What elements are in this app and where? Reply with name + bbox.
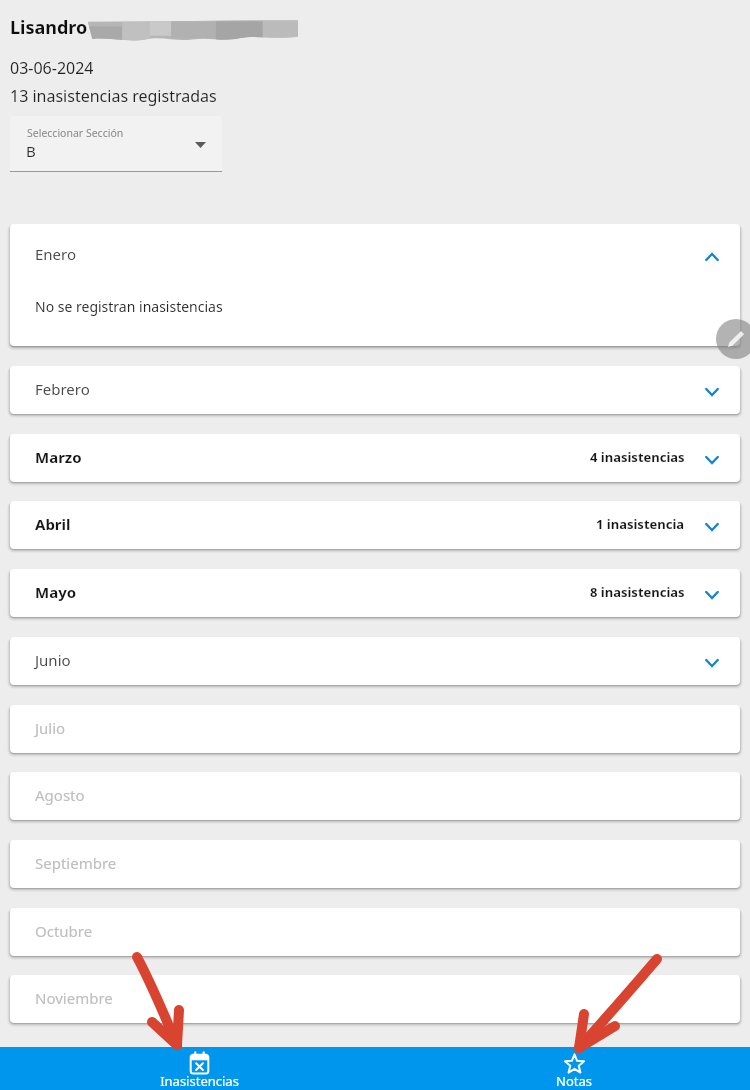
button[interactable]: Abril bbox=[10, 501, 740, 549]
staticText: 4 inasistencias bbox=[590, 448, 685, 466]
staticText: 13 inasistencias registradas bbox=[10, 85, 217, 107]
button[interactable]: Julio bbox=[10, 705, 740, 753]
button[interactable]: Septiembre bbox=[10, 840, 740, 888]
staticText: Julio bbox=[35, 718, 66, 738]
staticText: Octubre bbox=[35, 921, 93, 941]
staticText: Junio bbox=[35, 650, 71, 670]
staticText: No se registran inasistencias bbox=[35, 297, 223, 316]
button[interactable]: Febrero bbox=[10, 366, 740, 414]
staticText: Inasistencias bbox=[160, 1072, 239, 1090]
staticText: 1 inasistencia bbox=[596, 515, 685, 533]
button[interactable]: Junio bbox=[10, 637, 740, 685]
button[interactable]: Marzo bbox=[10, 434, 740, 482]
staticText: Mayo bbox=[35, 582, 77, 602]
staticText: Lisandro bbox=[10, 15, 88, 40]
staticText: Seleccionar Sección bbox=[27, 126, 124, 140]
staticText: B bbox=[26, 141, 36, 161]
button[interactable]: Notas bbox=[512, 1047, 636, 1090]
staticText: Enero bbox=[35, 244, 77, 264]
button[interactable]: Enero bbox=[10, 224, 740, 346]
button[interactable]: Editar bbox=[716, 319, 750, 359]
button[interactable]: Seleccionar Sección bbox=[10, 116, 222, 172]
button[interactable]: Octubre bbox=[10, 908, 740, 956]
staticText: 8 inasistencias bbox=[590, 583, 685, 601]
staticText: Febrero bbox=[35, 379, 90, 399]
staticText: Noviembre bbox=[35, 988, 113, 1008]
button[interactable]: Mayo bbox=[10, 569, 740, 617]
staticText: Septiembre bbox=[35, 853, 117, 873]
staticText: Marzo bbox=[35, 447, 82, 467]
staticText: 03-06-2024 bbox=[10, 57, 94, 79]
button[interactable]: Agosto bbox=[10, 772, 740, 820]
button[interactable]: Inasistencias bbox=[137, 1047, 261, 1090]
staticText: Abril bbox=[35, 514, 71, 534]
button[interactable]: Noviembre bbox=[10, 975, 740, 1023]
staticText: Agosto bbox=[35, 785, 85, 805]
staticText: Notas bbox=[556, 1072, 592, 1090]
